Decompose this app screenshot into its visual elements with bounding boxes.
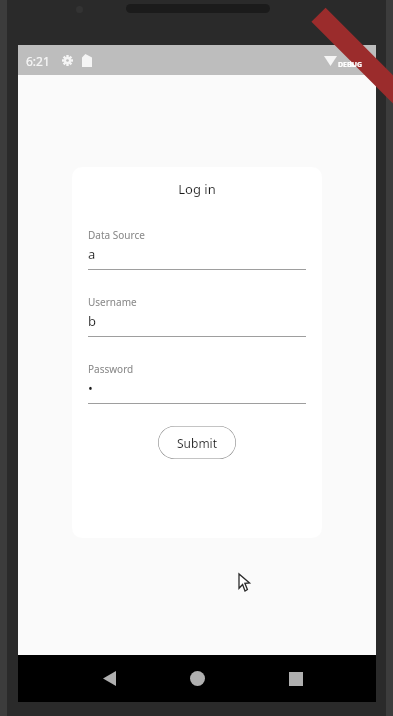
button[interactable]: Data Source: [88, 228, 306, 270]
staticText: DEBUG: [338, 60, 363, 70]
staticText: Password: [88, 362, 134, 376]
staticText: •: [88, 379, 93, 397]
staticText: b: [88, 312, 96, 330]
button[interactable]: Username: [88, 295, 306, 337]
button[interactable]: Password: [88, 362, 306, 404]
button[interactable]: Home: [167, 655, 227, 702]
staticText: Submit: [177, 435, 218, 451]
staticText: Log in: [72, 180, 322, 198]
button[interactable]: Recents: [266, 655, 326, 702]
button[interactable]: Submit: [158, 426, 236, 459]
staticText: 6:21: [26, 53, 50, 69]
staticText: a: [88, 245, 96, 263]
staticText: Data Source: [88, 228, 145, 242]
staticText: Username: [88, 295, 137, 309]
button[interactable]: Back: [79, 655, 139, 702]
